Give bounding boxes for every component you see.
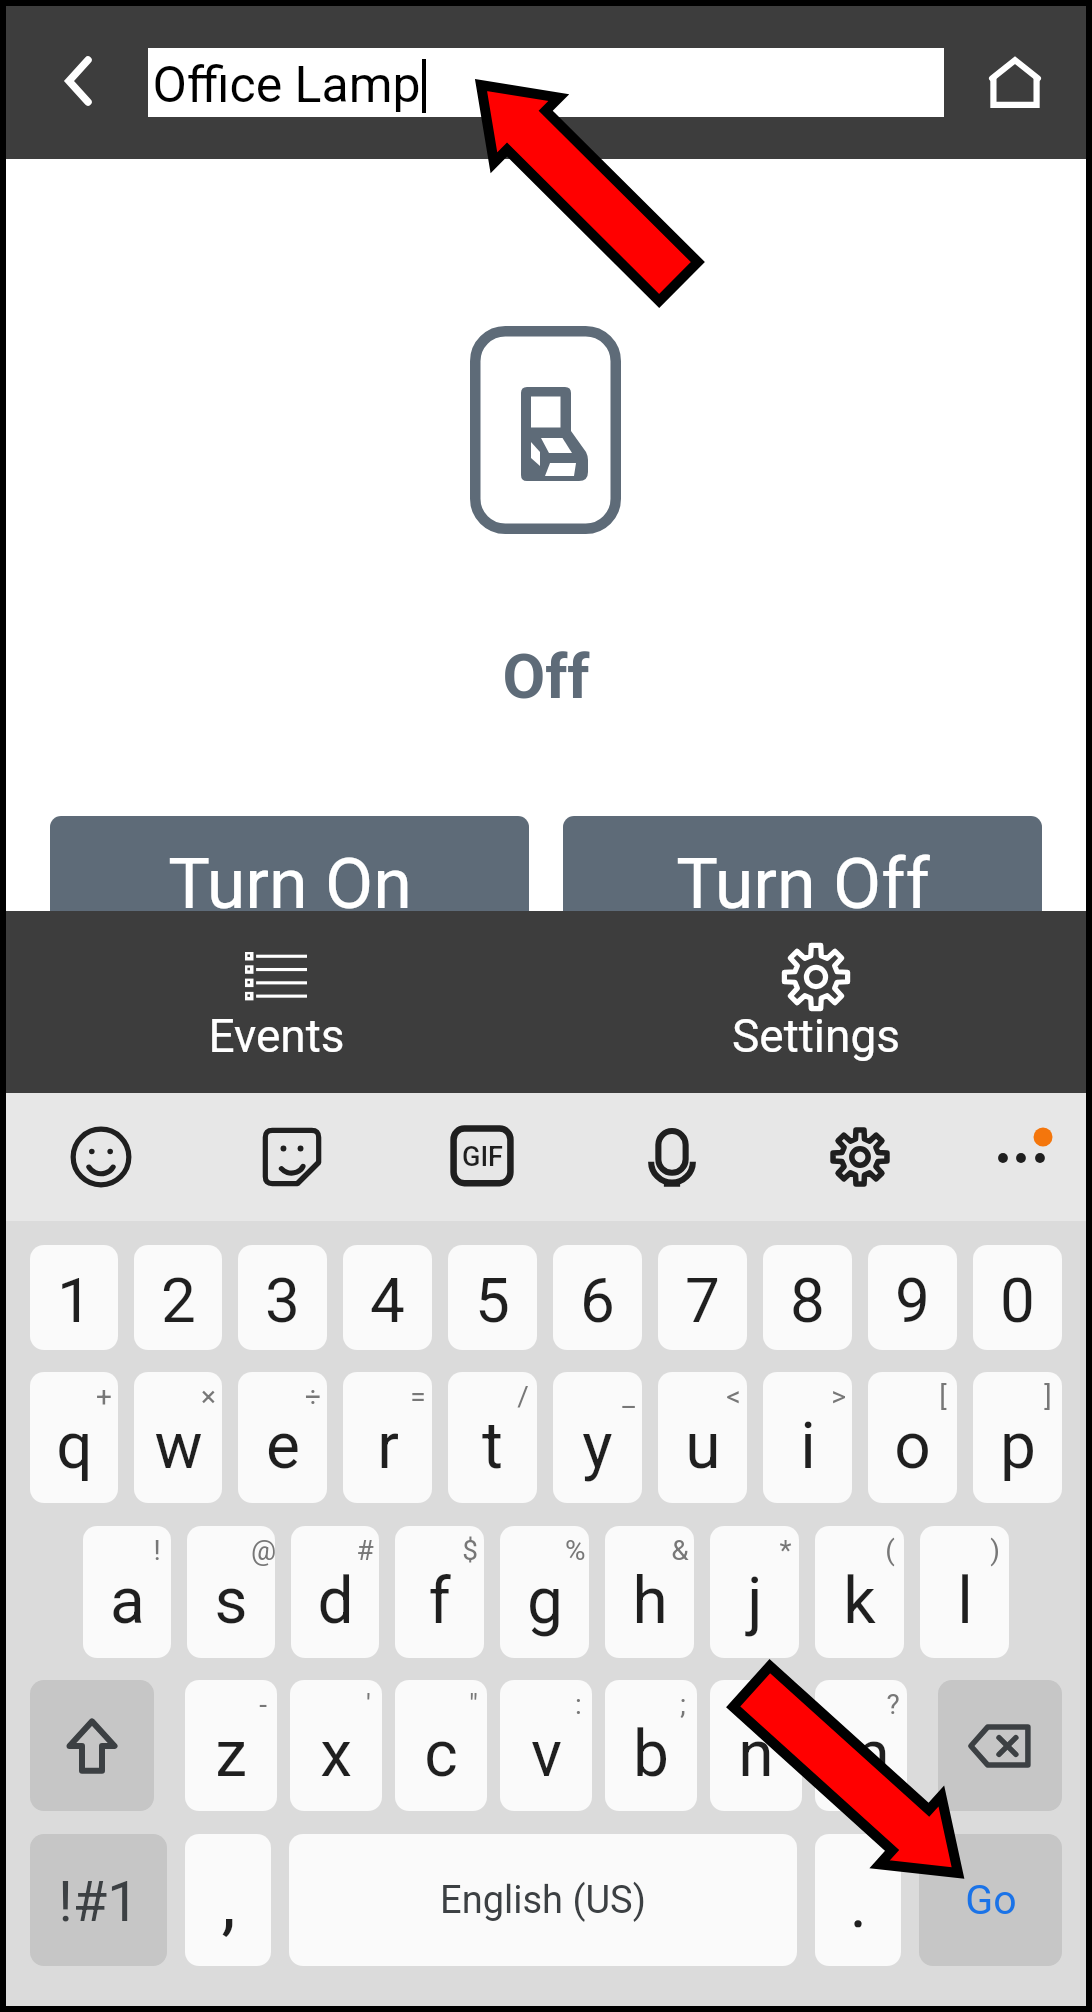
button[interactable]: Symbols [30, 1834, 167, 1966]
staticText: f [428, 1564, 451, 1639]
button[interactable]: Keyboard settings [816, 1113, 904, 1201]
button[interactable]: Turn On [50, 816, 529, 966]
staticText: v [531, 1717, 562, 1792]
button[interactable]: Period [815, 1834, 901, 1966]
staticText: > [831, 1380, 846, 1413]
button[interactable]: / [448, 1372, 537, 1503]
staticText: 0 [1000, 1264, 1035, 1337]
staticText: & [671, 1534, 689, 1567]
button[interactable]: Backspace [938, 1680, 1062, 1811]
staticText: Settings [732, 1009, 900, 1063]
button[interactable]: ! [710, 1680, 802, 1811]
button[interactable]: + [30, 1372, 118, 1503]
staticText: o [894, 1409, 931, 1484]
staticText: c [424, 1717, 458, 1792]
button[interactable]: Comma [185, 1834, 271, 1966]
staticText: ! [153, 1534, 161, 1567]
button[interactable]: Events [6, 911, 546, 1093]
button[interactable]: Turn Off [563, 816, 1042, 966]
button[interactable]: ] [973, 1372, 1062, 1503]
staticText: e [266, 1409, 300, 1484]
button[interactable]: ( [815, 1526, 904, 1658]
button[interactable]: Emoji [57, 1113, 145, 1201]
button[interactable]: > [763, 1372, 852, 1503]
staticText: p [1000, 1409, 1036, 1484]
button[interactable]: $ [395, 1526, 484, 1658]
staticText: = [410, 1380, 426, 1413]
staticText: ? [886, 1688, 900, 1721]
staticText: ; [680, 1688, 686, 1721]
button[interactable]: 6 [553, 1245, 642, 1350]
staticText: b [633, 1717, 669, 1792]
button[interactable]: 7 [658, 1245, 747, 1350]
button[interactable]: [ [868, 1372, 957, 1503]
staticText: $ [462, 1534, 478, 1567]
staticText: s [214, 1564, 248, 1639]
button[interactable]: : [500, 1680, 592, 1811]
button[interactable]: ; [605, 1680, 697, 1811]
button[interactable]: 0 [973, 1245, 1062, 1350]
button[interactable]: ? [815, 1680, 907, 1811]
staticText: Go [965, 1876, 1017, 1924]
button[interactable]: < [658, 1372, 747, 1503]
button[interactable]: % [500, 1526, 589, 1658]
staticText: * [779, 1534, 792, 1567]
staticText: [ [939, 1380, 947, 1413]
button[interactable]: ) [920, 1526, 1009, 1658]
staticText: : [575, 1688, 582, 1721]
staticText: k [843, 1564, 876, 1639]
staticText: @ [251, 1534, 271, 1567]
staticText: ) [990, 1534, 1000, 1567]
button[interactable]: Home [963, 30, 1067, 134]
button[interactable]: ! [83, 1526, 171, 1658]
staticText: i [800, 1409, 816, 1484]
button[interactable]: 1 [30, 1245, 118, 1350]
staticText: y [582, 1409, 613, 1484]
button[interactable]: @ [187, 1526, 275, 1658]
staticText: r [377, 1409, 399, 1484]
button[interactable]: ÷ [238, 1372, 327, 1503]
button[interactable]: 5 [448, 1245, 537, 1350]
button[interactable]: Stickers [248, 1113, 336, 1201]
button[interactable]: GIF [438, 1113, 526, 1201]
button[interactable]: Shift [30, 1680, 154, 1811]
button[interactable]: 8 [763, 1245, 852, 1350]
button[interactable]: * [710, 1526, 799, 1658]
staticText: 3 [265, 1264, 300, 1337]
button[interactable]: More options [976, 1113, 1064, 1201]
staticText: x [320, 1717, 352, 1792]
button[interactable]: Go [919, 1834, 1062, 1966]
button[interactable]: # [291, 1526, 379, 1658]
staticText: q [56, 1409, 93, 1484]
staticText: m [833, 1717, 890, 1792]
button[interactable]: × [134, 1372, 222, 1503]
button[interactable]: Space [289, 1834, 797, 1966]
button[interactable]: - [185, 1680, 277, 1811]
staticText: w [154, 1409, 203, 1484]
staticText: ] [1044, 1380, 1052, 1413]
button[interactable]: 9 [868, 1245, 957, 1350]
staticText: t [482, 1409, 503, 1484]
button[interactable]: 3 [238, 1245, 327, 1350]
staticText: 6 [580, 1264, 615, 1337]
staticText: × [201, 1380, 216, 1413]
staticText: + [96, 1380, 112, 1413]
button[interactable]: _ [553, 1372, 642, 1503]
button[interactable]: Back [36, 39, 120, 123]
staticText: 2 [161, 1264, 196, 1337]
button[interactable]: ' [290, 1680, 382, 1811]
staticText: 5 [475, 1264, 510, 1337]
button[interactable]: " [395, 1680, 487, 1811]
staticText: 7 [685, 1264, 720, 1337]
staticText: GIF [462, 1141, 503, 1173]
staticText: z [215, 1717, 247, 1792]
staticText: !#1 [58, 1869, 139, 1935]
staticText: ÷ [305, 1380, 321, 1413]
button[interactable]: 4 [343, 1245, 432, 1350]
button[interactable]: Office Lamp [148, 48, 944, 117]
button[interactable]: Settings [546, 911, 1086, 1093]
button[interactable]: = [343, 1372, 432, 1503]
button[interactable]: & [605, 1526, 694, 1658]
button[interactable]: 2 [134, 1245, 222, 1350]
button[interactable]: Voice input [628, 1113, 716, 1201]
